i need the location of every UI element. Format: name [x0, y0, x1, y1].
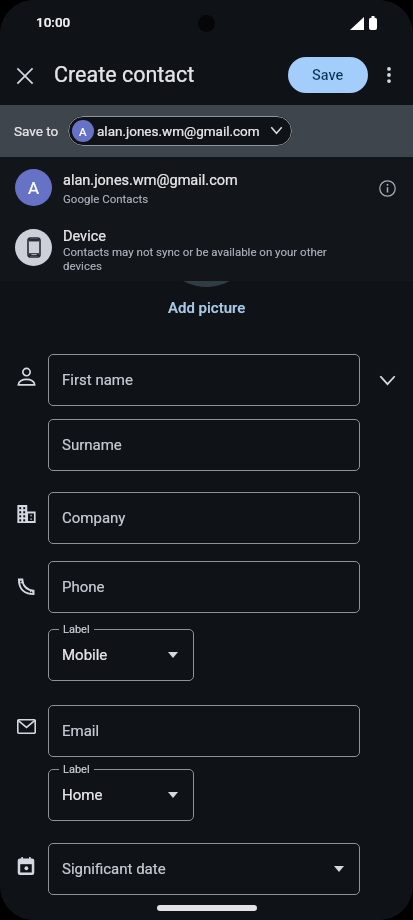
staticText: First name	[62, 371, 133, 389]
button[interactable]: Show more name fields	[370, 363, 404, 397]
staticText: Company	[62, 509, 126, 527]
staticText: Phone	[62, 578, 105, 596]
button[interactable]: First name	[48, 354, 360, 406]
button[interactable]	[48, 769, 194, 821]
staticText: Surname	[62, 436, 122, 454]
button[interactable]: About Google Contacts	[378, 179, 397, 198]
button[interactable]: A	[68, 116, 292, 146]
staticText: Save	[312, 67, 344, 84]
staticText: Save to	[14, 123, 59, 139]
staticText: A	[28, 178, 40, 198]
button[interactable]: Device	[0, 219, 413, 280]
button[interactable]: Company	[48, 492, 360, 544]
button[interactable]: Save	[288, 57, 368, 93]
staticText: Significant date	[62, 860, 166, 878]
button[interactable]: Phone	[48, 561, 360, 613]
button[interactable]: Surname	[48, 419, 360, 471]
staticText: Label	[63, 763, 90, 776]
button[interactable]: Add picture	[160, 296, 254, 320]
button[interactable]: Significant date	[48, 843, 360, 895]
staticText: Mobile	[62, 646, 108, 664]
staticText: Contacts may not sync or be available on…	[63, 245, 343, 273]
staticText: Create contact	[54, 62, 195, 87]
staticText: Home	[62, 786, 103, 804]
button[interactable]: More options	[371, 57, 407, 93]
button[interactable]: Close	[5, 56, 45, 96]
staticText: Label	[63, 623, 90, 636]
staticText: A	[79, 125, 87, 138]
staticText: 10:00	[36, 14, 71, 30]
staticText: Google Contacts	[63, 192, 149, 205]
staticText: Email	[62, 722, 100, 740]
staticText: alan.jones.wm@gmail.com	[97, 123, 260, 139]
button[interactable]: A	[0, 157, 413, 219]
button[interactable]	[48, 629, 194, 681]
button[interactable]: Email	[48, 705, 360, 757]
staticText: Device	[63, 228, 106, 245]
staticText: alan.jones.wm@gmail.com	[63, 172, 238, 189]
staticText: Add picture	[168, 299, 246, 317]
